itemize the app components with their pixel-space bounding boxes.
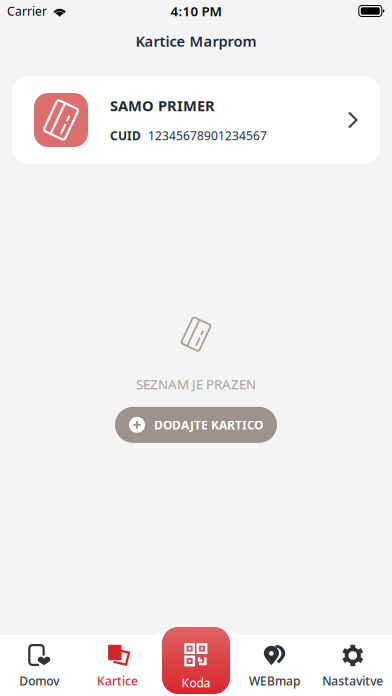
button[interactable]: Koda — [162, 627, 230, 694]
staticText: DODAJTE KARTICO — [154, 417, 263, 433]
staticText: SEZNAM JE PRAZEN — [136, 375, 256, 393]
staticText: Domov — [19, 673, 59, 689]
staticText: SAMO PRIMER — [110, 96, 215, 115]
staticText: Carrier — [7, 3, 47, 19]
button[interactable]: WEBmap — [235, 632, 314, 693]
button[interactable]: Domov — [0, 632, 78, 693]
button[interactable]: Nastavitve — [314, 632, 392, 693]
staticText: Nastavitve — [322, 673, 383, 689]
button[interactable]: Kartice — [78, 632, 157, 693]
button[interactable]: SAMO PRIMER — [12, 76, 380, 164]
staticText: WEBmap — [249, 673, 300, 689]
staticText: 12345678901234567 — [148, 127, 267, 143]
staticText: 4:10 PM — [170, 2, 221, 20]
staticText: Koda — [181, 675, 210, 691]
staticText: Kartice Marprom — [135, 31, 256, 51]
staticText: Kartice — [97, 673, 138, 689]
staticText: CUID — [110, 127, 141, 143]
button[interactable]: DODAJTE KARTICO — [115, 407, 277, 443]
